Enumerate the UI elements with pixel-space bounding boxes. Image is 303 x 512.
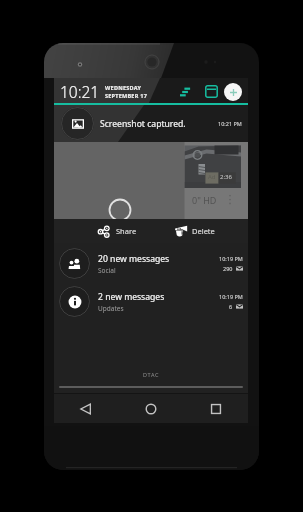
button[interactable]: Back [54,394,118,423]
staticText: Delete [192,226,215,236]
staticText: Screenshot captured. [100,118,186,130]
button[interactable]: Add user [224,83,242,101]
staticText: 10:19 PM [219,255,243,262]
staticText: 2:36 [220,173,232,181]
staticText: WEDNESDAY [105,84,142,91]
button[interactable]: 2 new messages [54,283,248,320]
button[interactable]: Battery [204,84,219,99]
staticText: 10:19 PM [219,293,243,300]
staticText: 2 new messages [98,291,165,303]
staticText: Updates [98,304,124,313]
staticText: 290 [223,265,233,272]
button[interactable]: 20 new messages [54,245,248,282]
staticText: Share [116,226,137,236]
button[interactable]: Wi-Fi [178,84,193,99]
staticText: 6 [229,303,233,310]
staticText: SEPTEMBER 17 [105,92,148,99]
staticText: DTAC [143,371,160,378]
button[interactable]: Screenshot captured. [54,105,248,142]
staticText: 20 new messages [98,253,170,265]
staticText: 10:21 PM [218,120,242,127]
button[interactable]: Recents [183,394,248,423]
staticText: 10:21 [60,81,100,102]
staticText: Ad [208,173,216,181]
staticText: 0" HD [192,194,217,206]
staticText: Social [98,266,116,275]
button[interactable]: Home [118,394,183,423]
button[interactable]: Delete [174,219,215,243]
button[interactable]: Share [97,219,137,243]
